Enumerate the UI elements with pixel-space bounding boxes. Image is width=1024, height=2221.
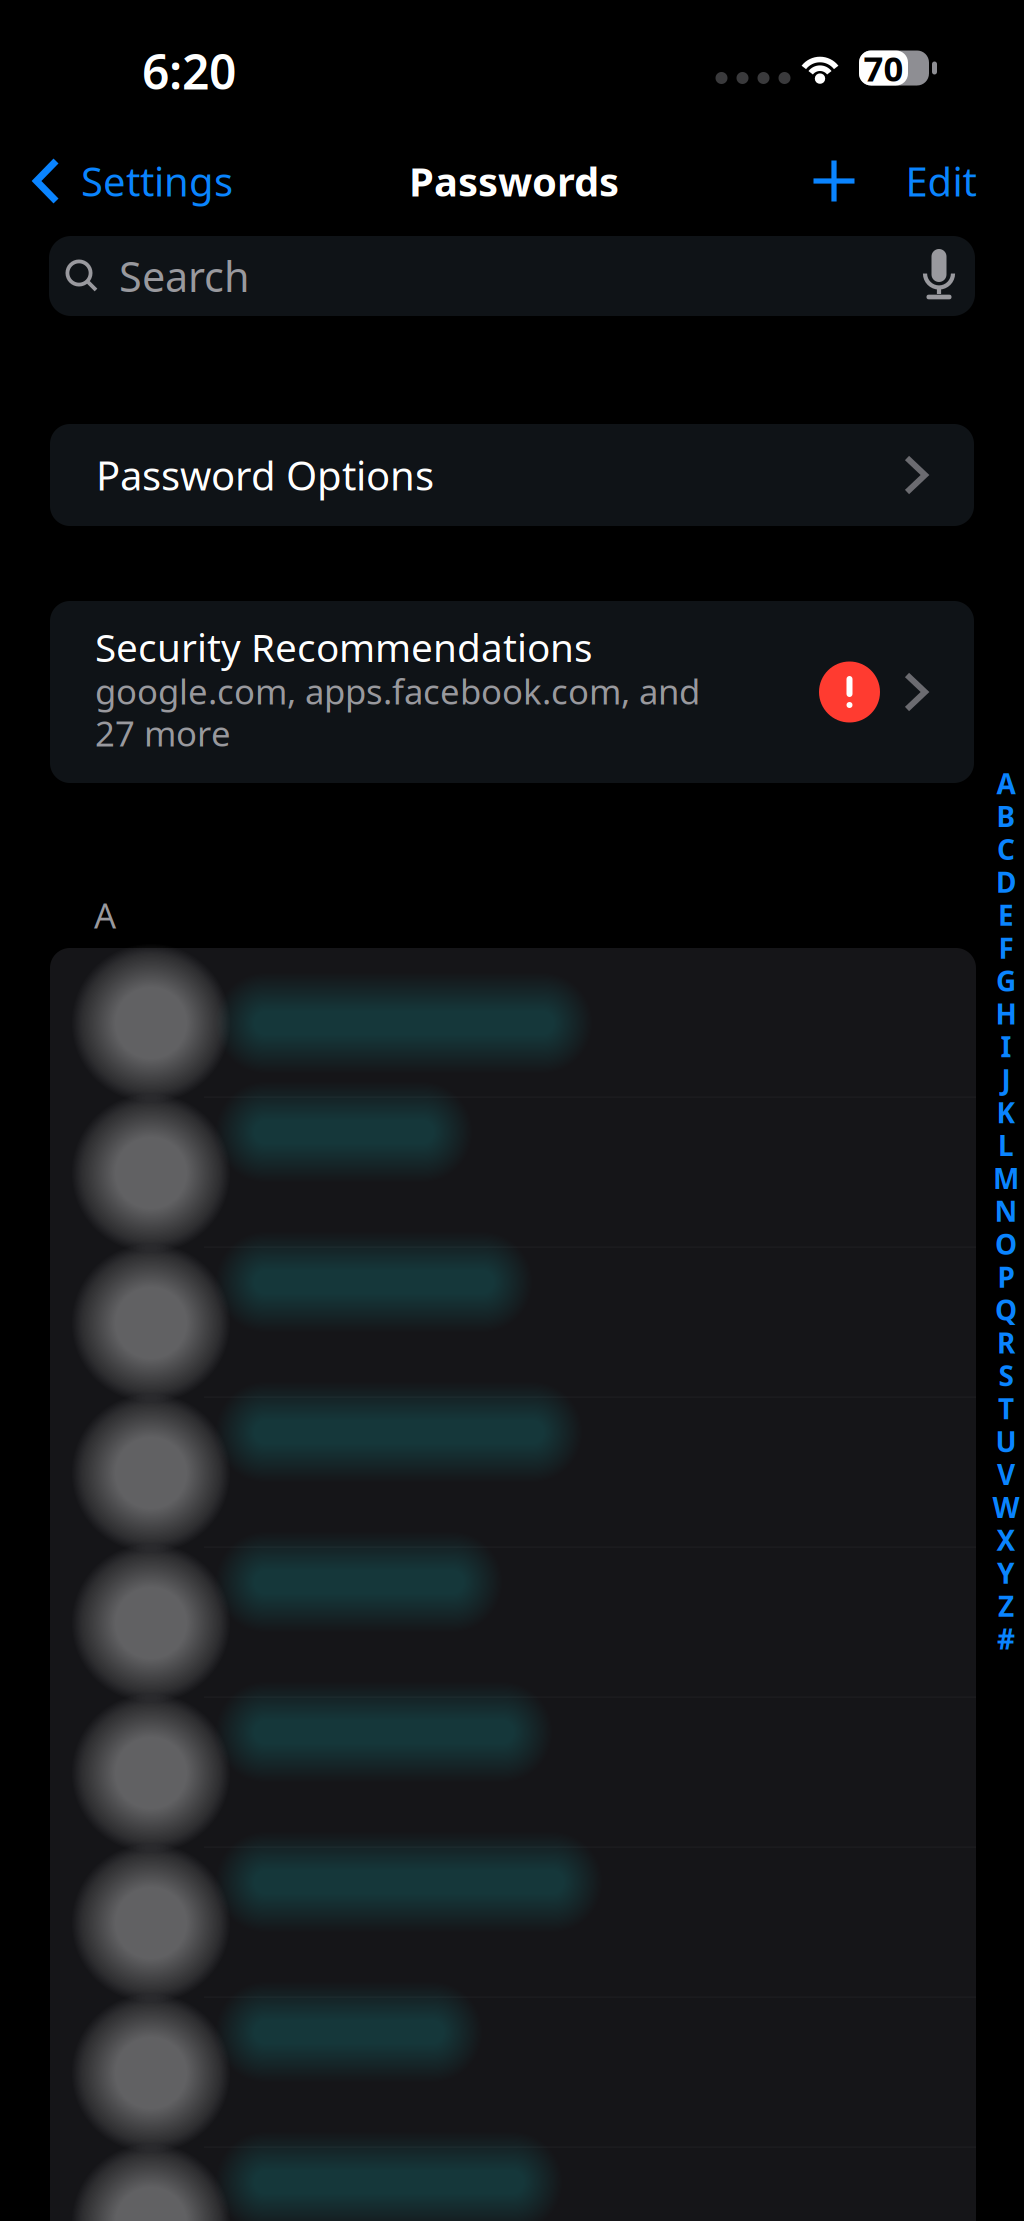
staticText: 27 more bbox=[95, 710, 231, 756]
button[interactable]: Password Options bbox=[50, 424, 974, 526]
staticText: U bbox=[995, 1423, 1016, 1460]
staticText: R bbox=[997, 1324, 1015, 1361]
staticText: P bbox=[997, 1258, 1014, 1295]
staticText: J bbox=[1001, 1061, 1010, 1098]
staticText: A bbox=[94, 892, 116, 938]
staticText: Y bbox=[997, 1554, 1015, 1591]
staticText: S bbox=[998, 1357, 1013, 1394]
staticText: # bbox=[997, 1620, 1015, 1657]
button[interactable]: Edit bbox=[891, 145, 991, 217]
staticText: Z bbox=[998, 1587, 1014, 1624]
staticText: K bbox=[996, 1094, 1015, 1131]
staticText: L bbox=[998, 1127, 1014, 1164]
staticText: D bbox=[996, 863, 1016, 901]
staticText: W bbox=[992, 1488, 1019, 1526]
staticText: Settings bbox=[81, 154, 233, 207]
staticText: B bbox=[996, 798, 1015, 835]
staticText: C bbox=[997, 830, 1015, 868]
staticText: Passwords bbox=[409, 154, 619, 207]
staticText: V bbox=[997, 1456, 1015, 1493]
button[interactable]: Search bbox=[49, 236, 975, 316]
staticText: M bbox=[993, 1159, 1019, 1197]
staticText: 6:20 bbox=[142, 39, 236, 103]
staticText: H bbox=[995, 995, 1016, 1032]
staticText: Security Recommendations bbox=[95, 621, 593, 673]
staticText: G bbox=[996, 962, 1016, 999]
staticText: Edit bbox=[905, 154, 976, 207]
staticText: O bbox=[995, 1225, 1017, 1262]
staticText: I bbox=[1000, 1028, 1011, 1065]
staticText: N bbox=[994, 1192, 1017, 1230]
button[interactable]: Add Password bbox=[796, 145, 872, 217]
staticText: Password Options bbox=[96, 448, 434, 501]
staticText: 70 bbox=[863, 45, 903, 91]
staticText: Q bbox=[995, 1291, 1017, 1328]
staticText: T bbox=[998, 1390, 1014, 1427]
staticText: E bbox=[998, 896, 1014, 933]
button[interactable]: Security Recommendations bbox=[50, 601, 974, 783]
button[interactable]: Settings bbox=[25, 145, 255, 217]
staticText: google.com, apps.facebook.com, and bbox=[95, 668, 700, 714]
staticText: X bbox=[996, 1521, 1015, 1559]
staticText: A bbox=[996, 765, 1015, 802]
staticText: F bbox=[998, 929, 1013, 966]
staticText: Search bbox=[119, 249, 250, 303]
